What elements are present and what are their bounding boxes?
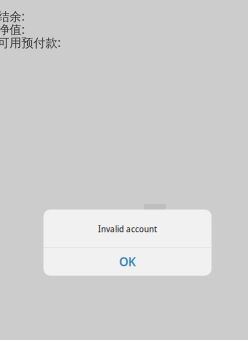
button[interactable]: OK (43, 248, 211, 276)
staticText: 结余: (0, 8, 24, 24)
staticText: 净值: (0, 21, 24, 37)
staticText: OK (119, 253, 136, 270)
staticText: Invalid account (98, 224, 157, 235)
staticText: 可用预付款: (0, 34, 60, 51)
